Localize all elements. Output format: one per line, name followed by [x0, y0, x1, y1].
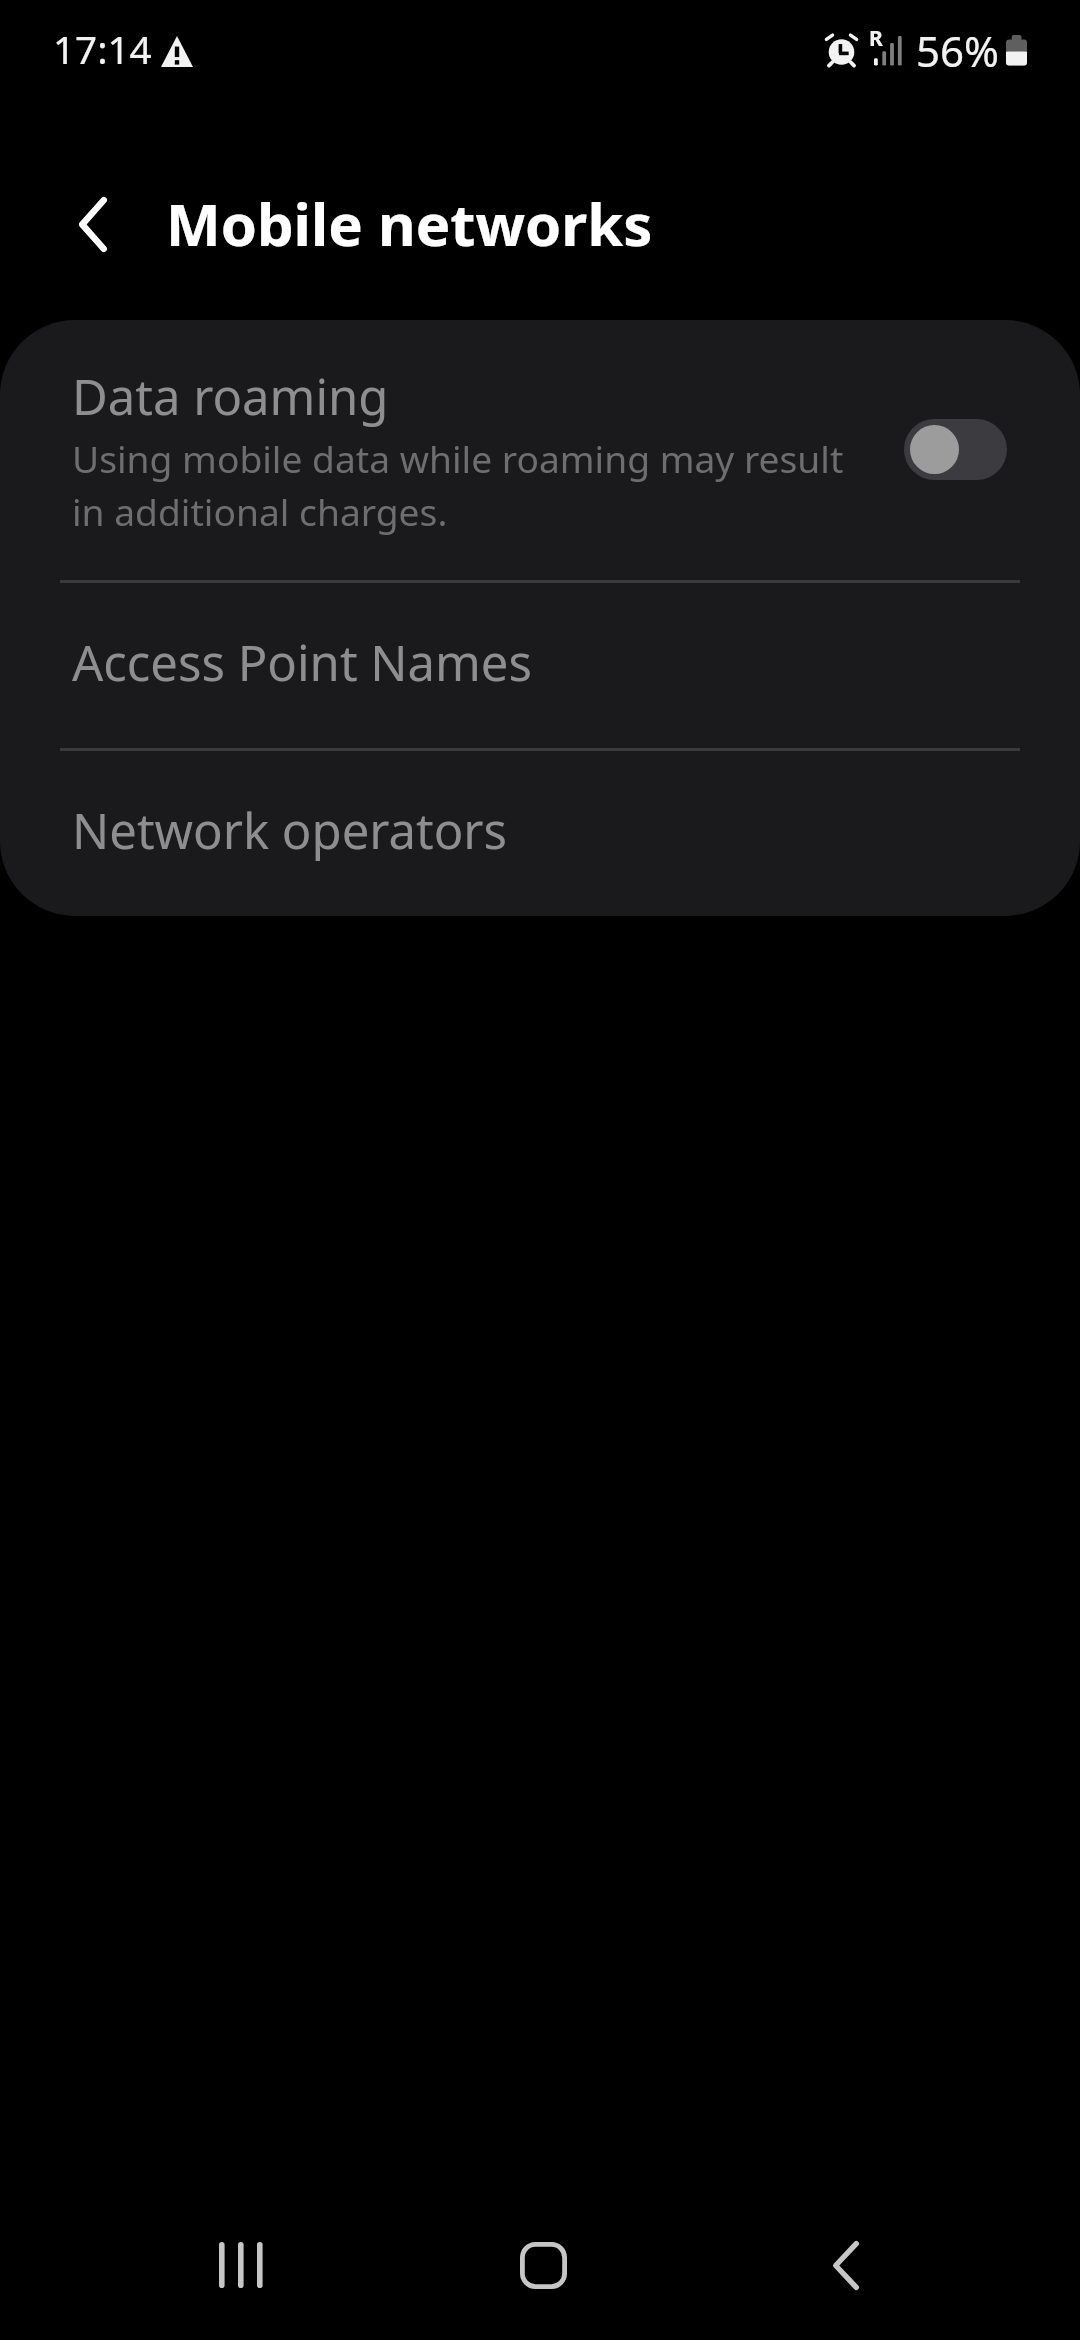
button[interactable]: Home	[481, 2203, 605, 2327]
staticText: Data roaming	[72, 363, 389, 430]
button[interactable]: Data roaming toggle	[904, 419, 1007, 480]
staticText: R	[869, 24, 883, 53]
staticText: Network operators	[72, 797, 508, 864]
staticText: 17:14	[53, 23, 152, 76]
button[interactable]: Data roaming	[0, 320, 1080, 580]
staticText: Using mobile data while roaming may resu…	[72, 433, 862, 536]
staticText: Mobile networks	[166, 184, 653, 263]
button[interactable]: Access Point Names	[0, 581, 1080, 749]
button[interactable]: Network operators	[0, 750, 1080, 916]
button[interactable]: Back	[784, 2203, 908, 2327]
staticText: Access Point Names	[72, 629, 532, 696]
button[interactable]: Recent apps	[179, 2203, 303, 2327]
button[interactable]: Navigate up	[35, 166, 151, 282]
staticText: 56%	[916, 22, 999, 79]
